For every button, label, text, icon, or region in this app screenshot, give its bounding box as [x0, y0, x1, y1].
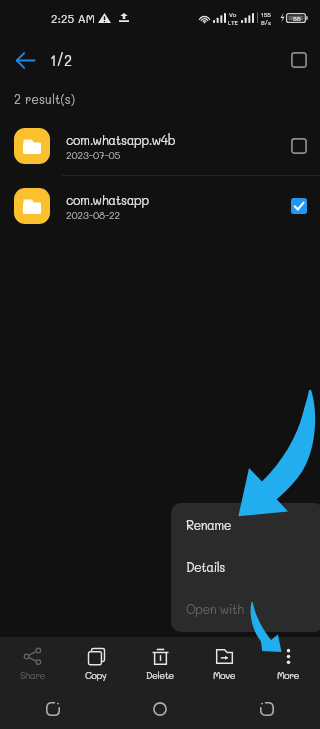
- button[interactable]: Back: [213, 689, 320, 729]
- staticText: 58: [293, 14, 301, 22]
- staticText: 2023-07-05: [66, 148, 121, 161]
- button[interactable]: Select item: [284, 191, 314, 221]
- button[interactable]: Copy: [64, 637, 128, 689]
- button[interactable]: com.whatsapp: [0, 176, 320, 236]
- staticText: Delete: [146, 669, 174, 681]
- button[interactable]: Open with: [171, 588, 320, 630]
- staticText: Share: [20, 669, 45, 681]
- staticText: B/s: [261, 19, 271, 27]
- button[interactable]: More: [256, 637, 320, 689]
- staticText: Open with: [186, 601, 244, 617]
- staticText: 2023-08-22: [66, 208, 120, 221]
- staticText: Vo: [229, 11, 237, 19]
- button[interactable]: com.whatsapp.w4b: [0, 116, 320, 176]
- button[interactable]: Home: [106, 689, 213, 729]
- staticText: Copy: [85, 669, 107, 681]
- button[interactable]: Back: [12, 47, 38, 73]
- staticText: LTE: [228, 19, 238, 27]
- staticText: Rename: [186, 517, 231, 533]
- button[interactable]: Select item: [284, 131, 314, 161]
- button[interactable]: Move: [192, 637, 256, 689]
- staticText: 2:25 AM: [51, 11, 95, 26]
- staticText: Move: [213, 669, 236, 681]
- staticText: 1/2: [50, 51, 73, 70]
- button[interactable]: Select all: [284, 45, 314, 75]
- staticText: com.whatsapp.w4b: [66, 132, 176, 148]
- button[interactable]: Delete: [128, 637, 192, 689]
- button[interactable]: Details: [171, 546, 320, 588]
- staticText: com.whatsapp: [66, 192, 149, 208]
- button[interactable]: Rename: [171, 504, 320, 546]
- button[interactable]: Share: [0, 637, 64, 689]
- staticText: 155: [261, 11, 271, 19]
- staticText: Details: [186, 559, 225, 575]
- staticText: 2 result(s): [14, 91, 76, 107]
- staticText: More: [277, 669, 299, 681]
- button[interactable]: Recents: [0, 689, 106, 729]
